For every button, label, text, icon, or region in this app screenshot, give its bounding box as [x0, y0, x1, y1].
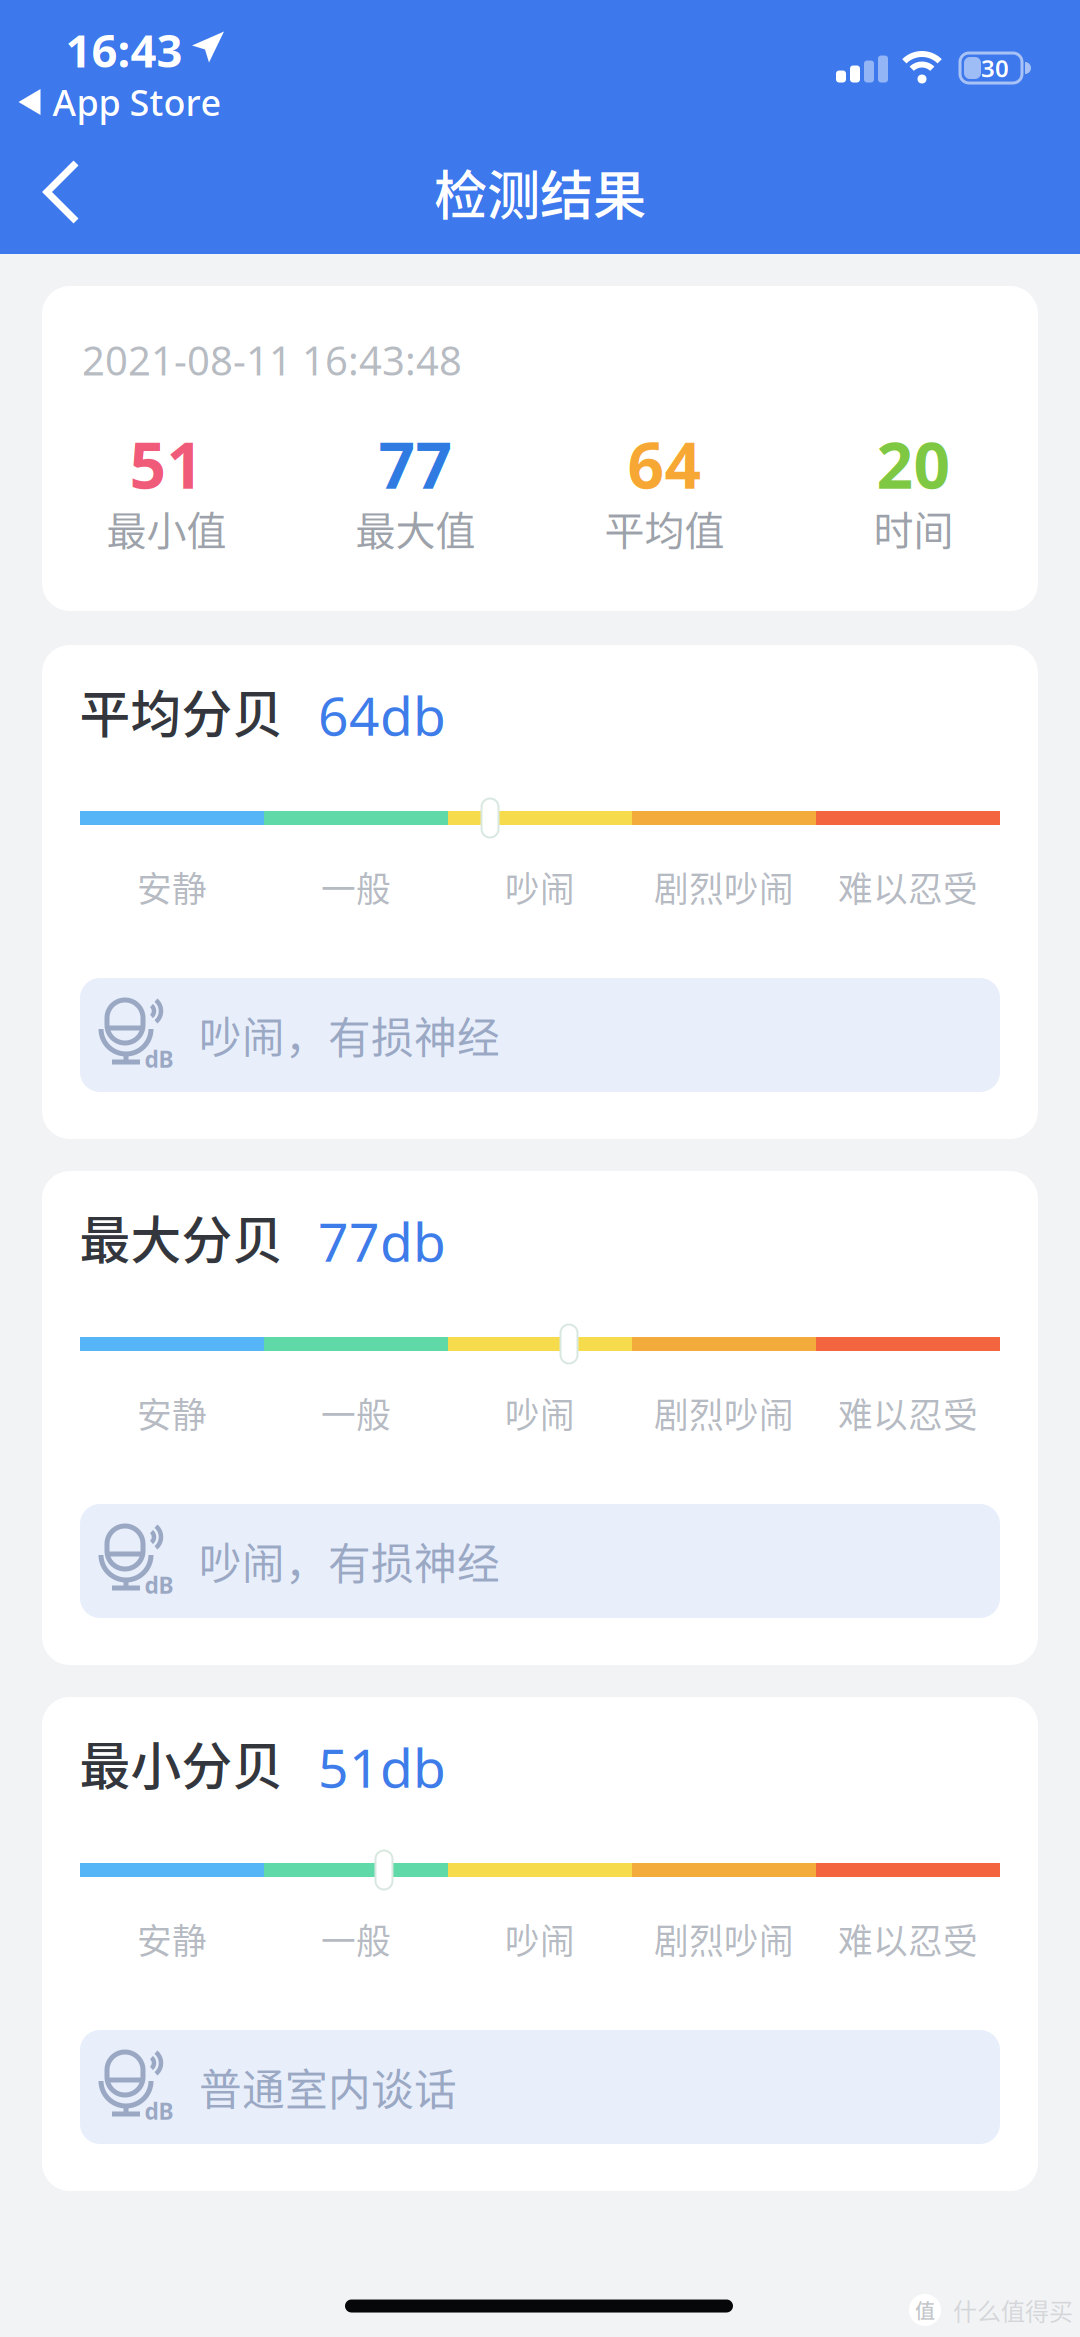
staticText: 最小值 — [106, 499, 226, 557]
staticText: dB — [144, 1044, 173, 1074]
button[interactable]: Back to App Store — [18, 78, 221, 126]
staticText: 检测结果 — [434, 153, 646, 231]
staticText: 安静 — [137, 1388, 207, 1438]
staticText: 普通室内谈话 — [199, 2056, 457, 2118]
staticText: 难以忍受 — [838, 862, 978, 912]
staticText: 什么值得买 — [953, 2293, 1073, 2327]
staticText: 时间 — [873, 499, 953, 557]
staticText: dB — [144, 2096, 173, 2126]
staticText: 安静 — [137, 1914, 207, 1964]
staticText: 平均值 — [604, 499, 724, 557]
staticText: 吵闹，有损神经 — [199, 1004, 500, 1066]
staticText: 最小分贝 — [79, 1726, 283, 1800]
staticText: 安静 — [137, 862, 207, 912]
staticText: 值 — [915, 2295, 935, 2324]
staticText: 64 — [627, 421, 701, 506]
staticText: 剧烈吵闹 — [654, 862, 794, 912]
staticText: 吵闹，有损神经 — [199, 1530, 500, 1592]
staticText: 2021-08-11 16:43:48 — [82, 333, 462, 386]
staticText: 16:43 — [65, 20, 182, 80]
staticText: 一般 — [321, 1388, 391, 1438]
staticText: App Store — [52, 78, 221, 126]
staticText: 64db — [318, 680, 446, 750]
staticText: 一般 — [321, 862, 391, 912]
staticText: 平均分贝 — [79, 674, 283, 748]
staticText: 一般 — [321, 1914, 391, 1964]
staticText: 剧烈吵闹 — [654, 1914, 794, 1964]
staticText: 最大分贝 — [79, 1200, 283, 1274]
staticText: 难以忍受 — [838, 1914, 978, 1964]
staticText: 剧烈吵闹 — [654, 1388, 794, 1438]
staticText: dB — [144, 1570, 173, 1600]
staticText: 最大值 — [355, 499, 475, 557]
staticText: 51 — [129, 421, 203, 506]
staticText: 吵闹 — [505, 862, 575, 912]
staticText: 难以忍受 — [838, 1388, 978, 1438]
staticText: 吵闹 — [505, 1388, 575, 1438]
staticText: 吵闹 — [505, 1914, 575, 1964]
staticText: 20 — [876, 421, 950, 506]
button[interactable]: Back — [2, 149, 112, 235]
staticText: 77 — [378, 421, 452, 506]
staticText: 30 — [981, 52, 1009, 84]
staticText: 51db — [318, 1732, 446, 1802]
staticText: 77db — [318, 1206, 446, 1276]
